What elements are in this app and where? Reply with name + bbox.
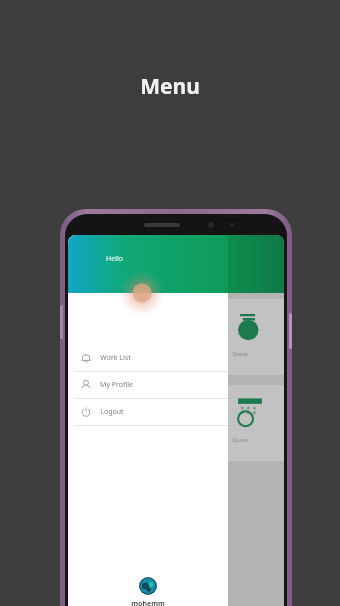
button[interactable]: Queue [228,299,284,375]
button[interactable]: My Profile [68,372,228,398]
staticText: Hello [106,254,123,264]
staticText: My Profile [100,380,133,390]
staticText: Menu [140,72,200,101]
staticText: Queue [232,437,248,444]
staticText: Logout [100,407,124,417]
staticText: mohemm [131,599,165,606]
staticText: Work List [100,353,131,363]
staticText: Queue [232,351,248,358]
button[interactable]: Logout [68,399,228,425]
button[interactable]: Queue [228,385,284,461]
button[interactable]: Work List [68,345,228,371]
